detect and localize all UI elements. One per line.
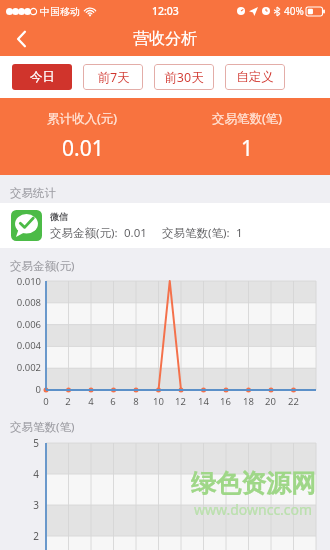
button[interactable]: 今日 (12, 64, 72, 90)
staticText: 20 (265, 395, 276, 408)
staticText: 交易笔数(笔): (162, 225, 230, 241)
staticText: 5 (33, 436, 39, 450)
staticText: 1 (236, 225, 243, 241)
staticText: 0.010 (16, 275, 41, 288)
staticText: 22 (288, 395, 299, 408)
staticText: 0.01 (124, 225, 147, 241)
staticText: 10 (153, 395, 164, 408)
staticText: www.downcc.com (194, 500, 313, 519)
staticText: 0.004 (16, 339, 41, 352)
staticText: 交易笔数(笔) (10, 419, 75, 435)
staticText: 交易统计 (10, 186, 56, 200)
staticText: 2 (65, 395, 71, 408)
button[interactable]: 前30天 (154, 64, 214, 90)
staticText: 16 (220, 395, 231, 408)
staticText: 0.008 (16, 296, 41, 309)
staticText: 6 (110, 395, 116, 408)
staticText: 0.002 (16, 361, 41, 374)
staticText: 累计收入(元) (47, 110, 118, 127)
staticText: 前7天 (97, 69, 130, 86)
staticText: 1 (241, 134, 254, 163)
staticText: 12 (175, 395, 186, 408)
staticText: 今日 (30, 69, 55, 85)
staticText: 8 (133, 395, 139, 408)
staticText: 12:03 (152, 4, 179, 18)
staticText: 0.01 (62, 134, 104, 163)
staticText: 营收分析 (133, 29, 197, 49)
staticText: 绿色资源网 (191, 468, 316, 499)
staticText: 2 (33, 529, 39, 543)
staticText: 自定义 (236, 69, 274, 85)
staticText: 4 (33, 467, 39, 481)
staticText: 交易金额(元): (50, 225, 118, 241)
staticText: 前30天 (164, 69, 204, 86)
button[interactable]: 自定义 (225, 64, 285, 90)
staticText: 交易笔数(笔) (212, 110, 283, 127)
staticText: 交易金额(元) (10, 258, 75, 274)
staticText: 0 (35, 383, 41, 396)
staticText: 14 (198, 395, 209, 408)
staticText: 0 (43, 395, 49, 408)
button[interactable]: 微信 (0, 203, 330, 248)
staticText: 40% (284, 4, 304, 18)
button[interactable]: 前7天 (83, 64, 143, 90)
button[interactable]: Back (0, 22, 42, 56)
staticText: 中国移动 (40, 5, 80, 18)
staticText: 0.006 (16, 318, 41, 331)
staticText: 18 (243, 395, 254, 408)
staticText: 4 (88, 395, 94, 408)
staticText: 微信 (50, 211, 68, 222)
staticText: 3 (33, 498, 39, 512)
